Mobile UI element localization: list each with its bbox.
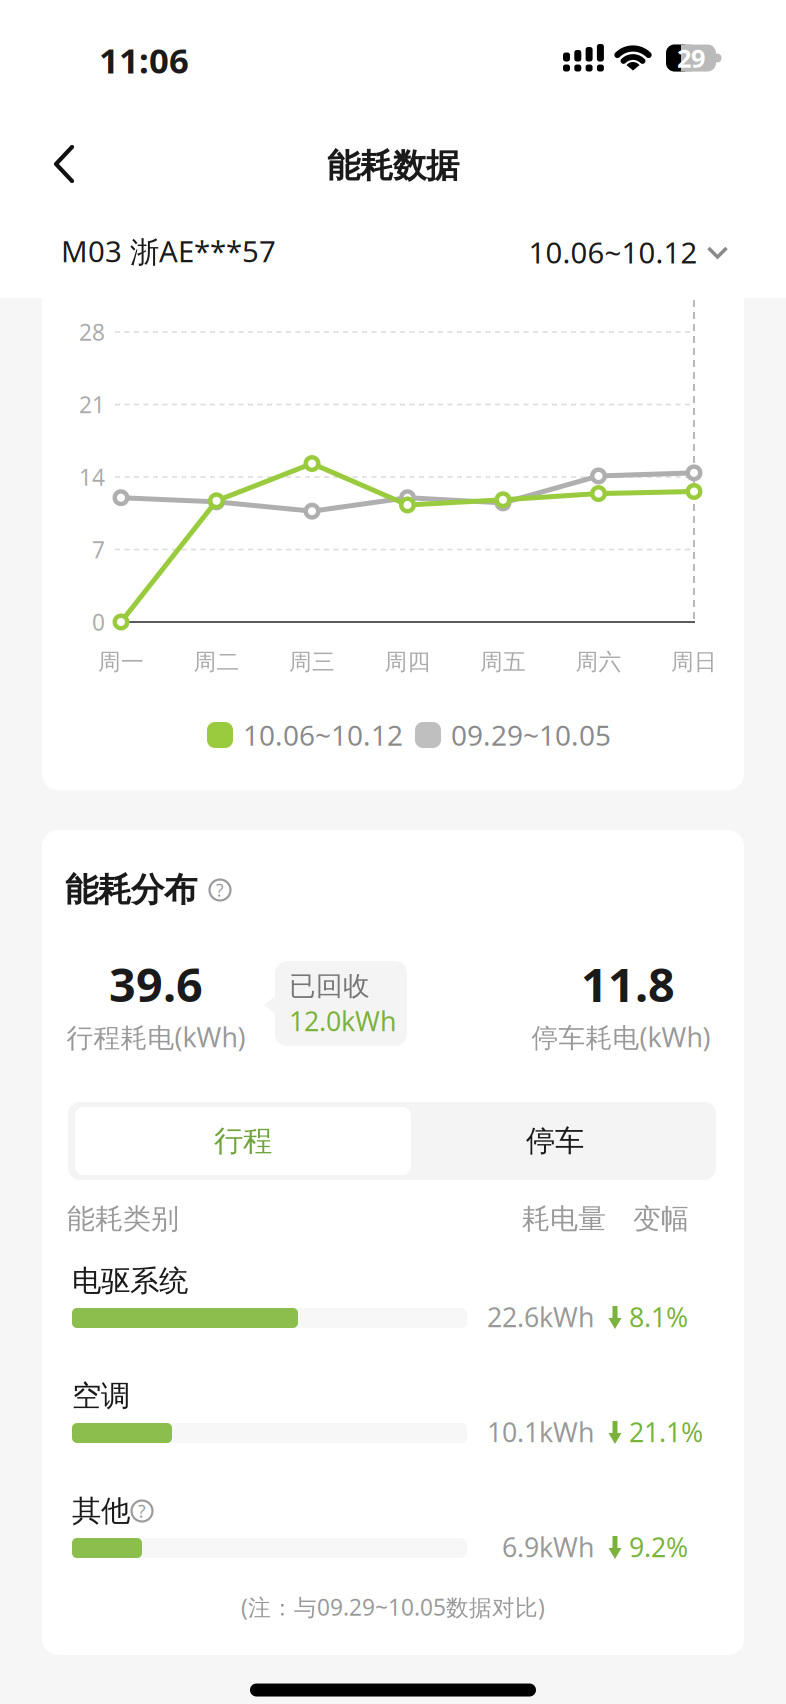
staticText: 停车	[526, 1123, 584, 1159]
staticText: 21	[79, 389, 105, 419]
staticText: 09.29~10.05	[451, 716, 611, 754]
staticText: 耗电量	[522, 1202, 606, 1236]
button[interactable]: 行程	[75, 1107, 411, 1175]
staticText: 周四	[384, 648, 430, 676]
staticText: 周一	[98, 648, 144, 676]
staticText: 周日	[671, 648, 717, 676]
button[interactable]: 帮助	[205, 875, 235, 905]
staticText: 能耗类别	[67, 1202, 179, 1236]
staticText: 空调	[72, 1378, 130, 1414]
staticText: 9.2%	[629, 1529, 688, 1565]
staticText: ?	[138, 1499, 146, 1522]
staticText: 8.1%	[629, 1299, 688, 1335]
staticText: 28	[79, 317, 105, 347]
staticText: 11:06	[99, 37, 189, 83]
staticText: 7	[92, 534, 105, 564]
staticText: 周六	[575, 648, 621, 676]
staticText: 11.8	[581, 953, 675, 1015]
staticText: M03 浙AE***57	[61, 231, 276, 270]
staticText: ?	[216, 878, 224, 901]
staticText: 12.0kWh	[289, 1003, 396, 1039]
staticText: 行程	[214, 1123, 272, 1159]
staticText: 10.06~10.12	[243, 716, 403, 754]
button[interactable]: 10.06~10.12	[528, 232, 729, 271]
staticText: 周三	[289, 648, 335, 676]
staticText: (注：与09.29~10.05数据对比)	[241, 1592, 545, 1622]
staticText: 22.6kWh	[487, 1299, 594, 1335]
staticText: 变幅	[633, 1202, 689, 1236]
staticText: 周五	[480, 648, 526, 676]
staticText: 10.1kWh	[487, 1414, 594, 1450]
staticText: 0	[92, 607, 105, 637]
staticText: 电驱系统	[72, 1263, 188, 1299]
staticText: 周二	[193, 648, 239, 676]
staticText: 其他	[72, 1493, 130, 1529]
staticText: 停车耗电(kWh)	[531, 1019, 710, 1055]
staticText: 14	[79, 462, 105, 492]
staticText: 39.6	[109, 953, 203, 1015]
staticText: 能耗数据	[327, 145, 459, 186]
staticText: 能耗分布	[65, 869, 197, 910]
staticText: 行程耗电(kWh)	[66, 1019, 245, 1055]
button[interactable]: Back	[34, 134, 94, 194]
button[interactable]: 帮助	[127, 1496, 157, 1526]
staticText: 已回收	[289, 970, 370, 1002]
staticText: 6.9kWh	[502, 1529, 594, 1565]
staticText: 29	[677, 41, 705, 75]
button[interactable]: 停车	[405, 1107, 705, 1175]
staticText: 21.1%	[629, 1414, 703, 1450]
staticText: 10.06~10.12	[528, 232, 697, 271]
